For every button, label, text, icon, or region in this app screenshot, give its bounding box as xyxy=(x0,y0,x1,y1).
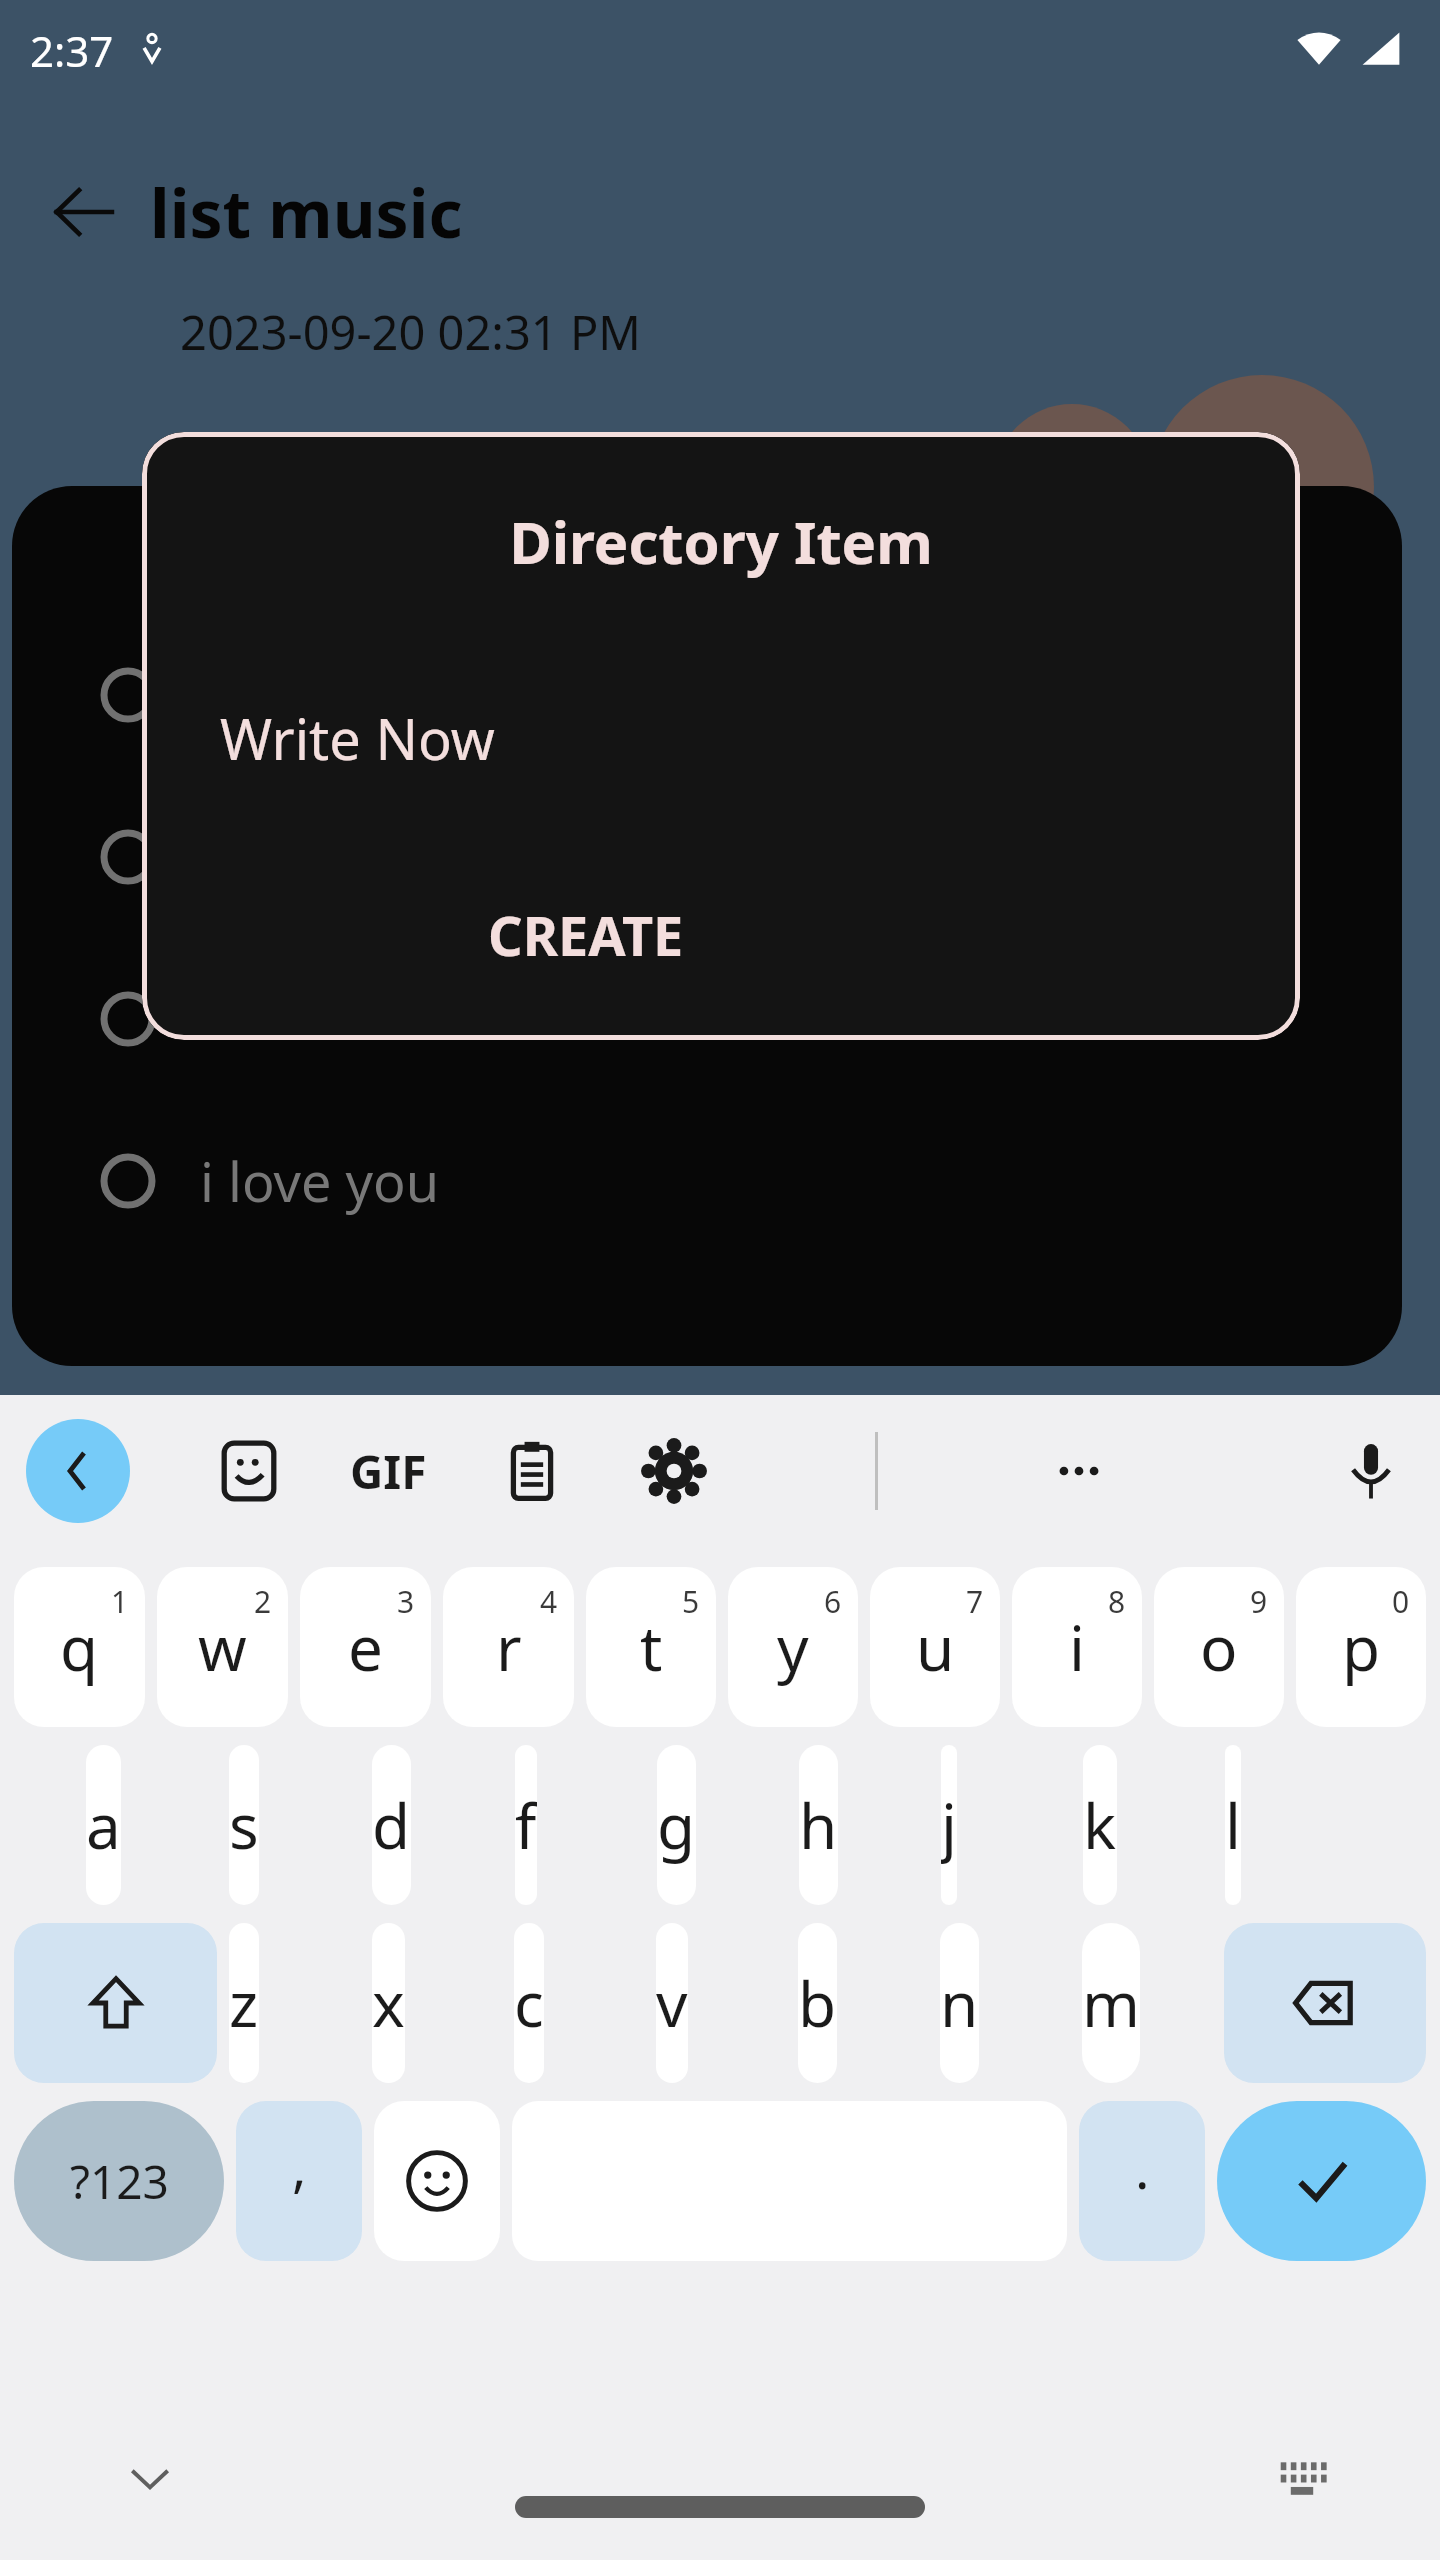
staticText: list music xyxy=(150,167,463,257)
button[interactable]: Backspace xyxy=(1224,1923,1426,2083)
staticText: d xyxy=(372,1783,411,1867)
staticText: w xyxy=(198,1605,247,1689)
staticText: z xyxy=(229,1961,259,2045)
button[interactable]: s xyxy=(229,1745,259,1905)
staticText: u xyxy=(916,1605,955,1689)
staticText: . xyxy=(1135,2131,1150,2205)
staticText: m xyxy=(1082,1961,1140,2045)
staticText: l xyxy=(1225,1783,1241,1867)
button[interactable]: j xyxy=(941,1745,957,1905)
button[interactable]: GIF xyxy=(350,1432,427,1510)
button[interactable]: x xyxy=(372,1923,405,2083)
button[interactable]: ?123 xyxy=(14,2101,224,2261)
staticText: GIF xyxy=(350,1440,427,1503)
button[interactable]: d xyxy=(372,1745,411,1905)
button[interactable]: q xyxy=(14,1567,145,1727)
staticText: 2 xyxy=(254,1581,272,1622)
button[interactable]: b xyxy=(798,1923,837,2083)
staticText: v xyxy=(656,1961,688,2045)
button[interactable] xyxy=(12,614,1402,776)
staticText: i xyxy=(1069,1605,1085,1689)
button[interactable]: k xyxy=(1083,1745,1117,1905)
button[interactable]: w xyxy=(157,1567,288,1727)
staticText: Directory Item xyxy=(509,502,933,581)
staticText: 5 xyxy=(682,1581,700,1622)
button[interactable]: Voice input xyxy=(1328,1428,1414,1514)
staticText: 8 xyxy=(1108,1581,1126,1622)
staticText: r xyxy=(496,1605,522,1689)
staticText: 6 xyxy=(824,1581,842,1622)
button[interactable] xyxy=(12,938,1402,1100)
button[interactable]: y xyxy=(728,1567,858,1727)
staticText: a xyxy=(86,1783,121,1867)
button[interactable]: Clipboard xyxy=(493,1432,571,1510)
button[interactable]: e xyxy=(300,1567,431,1727)
staticText: j xyxy=(941,1783,957,1867)
button[interactable]: Stickers xyxy=(210,1432,288,1510)
button[interactable]: h xyxy=(799,1745,838,1905)
staticText: o xyxy=(1200,1605,1238,1689)
staticText: s xyxy=(229,1783,259,1867)
staticText: g xyxy=(657,1783,696,1867)
staticText: 9 xyxy=(1250,1581,1268,1622)
button[interactable]: f xyxy=(515,1745,537,1905)
button[interactable]: c xyxy=(514,1923,544,2083)
staticText: 2023-09-20 02:31 PM xyxy=(180,300,641,364)
button[interactable]: u xyxy=(870,1567,1000,1727)
button[interactable]: Change keyboard xyxy=(1260,2436,1344,2520)
button[interactable]: i love you xyxy=(12,1100,1402,1262)
staticText: b xyxy=(798,1961,837,2045)
button[interactable]: l xyxy=(1225,1745,1241,1905)
staticText: ?123 xyxy=(70,2150,169,2213)
button[interactable]: Settings xyxy=(635,1432,713,1510)
button[interactable]: Back xyxy=(36,164,132,260)
staticText: x xyxy=(372,1961,405,2045)
staticText: f xyxy=(515,1783,537,1867)
button[interactable]: n xyxy=(940,1923,979,2083)
button[interactable]: r xyxy=(443,1567,574,1727)
staticText: CREATE xyxy=(488,898,684,972)
staticText: k xyxy=(1083,1783,1117,1867)
staticText: Write Now xyxy=(220,700,495,776)
button[interactable]: Hide keyboard xyxy=(108,2436,192,2520)
button[interactable]: a xyxy=(86,1745,121,1905)
button[interactable]: p xyxy=(1296,1567,1426,1727)
staticText: q xyxy=(60,1605,99,1689)
staticText: 1 xyxy=(111,1581,129,1622)
button[interactable]: t xyxy=(586,1567,716,1727)
button[interactable]: z xyxy=(229,1923,259,2083)
button[interactable]: . xyxy=(1079,2101,1205,2261)
button[interactable]: , xyxy=(236,2101,362,2261)
staticText: c xyxy=(514,1961,544,2045)
staticText: 2:37 xyxy=(30,22,114,79)
button[interactable]: v xyxy=(656,1923,688,2083)
button[interactable]: m xyxy=(1082,1923,1140,2083)
staticText: h xyxy=(799,1783,838,1867)
button[interactable] xyxy=(12,776,1402,938)
staticText: i love you xyxy=(200,1144,440,1218)
staticText: y xyxy=(777,1605,809,1689)
staticText: 3 xyxy=(397,1581,415,1622)
staticText: , xyxy=(292,2129,307,2203)
button[interactable]: CREATE xyxy=(460,884,712,986)
staticText: 7 xyxy=(966,1581,984,1622)
button[interactable]: Shift xyxy=(14,1923,217,2083)
button[interactable]: Emoji xyxy=(374,2101,500,2261)
staticText: e xyxy=(348,1605,383,1689)
button[interactable]: i xyxy=(1012,1567,1142,1727)
button[interactable]: Back xyxy=(26,1419,130,1523)
button[interactable]: o xyxy=(1154,1567,1284,1727)
button[interactable]: g xyxy=(657,1745,696,1905)
staticText: 4 xyxy=(540,1581,558,1622)
staticText: t xyxy=(640,1605,663,1689)
staticText: p xyxy=(1342,1605,1381,1689)
button[interactable]: Enter xyxy=(1217,2101,1426,2261)
button[interactable]: More options xyxy=(1040,1432,1118,1510)
staticText: n xyxy=(940,1961,979,2045)
staticText: 0 xyxy=(1392,1581,1410,1622)
